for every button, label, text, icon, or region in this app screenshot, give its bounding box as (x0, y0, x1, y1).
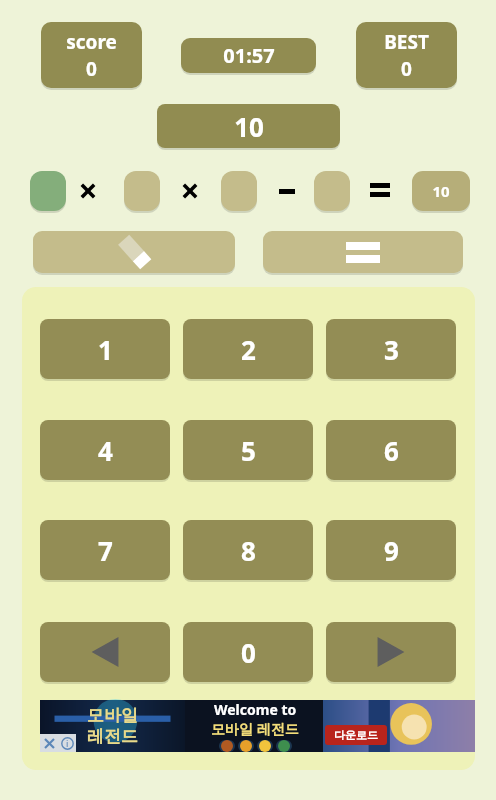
button[interactable] (314, 171, 350, 211)
staticText: 7 (98, 533, 113, 568)
button[interactable] (124, 171, 160, 211)
staticText: BEST (384, 29, 429, 55)
button[interactable]: score (41, 22, 142, 88)
button[interactable]: Erase (33, 231, 235, 273)
staticText: 3 (384, 332, 399, 367)
staticText: 1 (98, 332, 113, 367)
button[interactable]: 6 (326, 420, 456, 480)
button[interactable]: Previous (40, 622, 170, 682)
button[interactable]: 7 (40, 520, 170, 580)
staticText: 4 (98, 433, 113, 468)
button[interactable]: Next (326, 622, 456, 682)
button[interactable] (30, 171, 66, 211)
staticText: 10 (234, 109, 264, 144)
staticText: 다운로드 (334, 728, 378, 742)
button[interactable]: 0 (183, 622, 313, 682)
staticText: 01:57 (223, 42, 275, 69)
button[interactable]: Ad information (58, 734, 76, 752)
button[interactable]: 4 (40, 420, 170, 480)
staticText: score (66, 29, 117, 55)
button[interactable]: 3 (326, 319, 456, 379)
button[interactable]: 10 (412, 171, 470, 211)
staticText: 8 (241, 533, 256, 568)
staticText: 모바일 레전드 (211, 719, 299, 738)
button[interactable]: 10 (157, 104, 340, 148)
staticText: 0 (241, 635, 256, 670)
staticText: 레전드 (87, 726, 138, 747)
staticText: Welcome to (214, 700, 297, 719)
staticText: 모바일 (87, 705, 138, 726)
staticText: 6 (384, 433, 399, 468)
button[interactable]: 다운로드 (325, 725, 387, 745)
staticText: 5 (241, 433, 256, 468)
button[interactable]: Equals (263, 231, 463, 273)
button[interactable]: BEST (356, 22, 457, 88)
staticText: 9 (384, 533, 399, 568)
button[interactable]: 9 (326, 520, 456, 580)
button[interactable]: Close ad (40, 734, 58, 752)
button[interactable]: 8 (183, 520, 313, 580)
button[interactable]: 2 (183, 319, 313, 379)
button[interactable]: 01:57 (181, 38, 316, 73)
staticText: 0 (401, 56, 412, 82)
staticText: i (66, 737, 69, 749)
staticText: 10 (432, 181, 450, 201)
button[interactable] (221, 171, 257, 211)
staticText: 0 (86, 56, 97, 82)
button[interactable]: 5 (183, 420, 313, 480)
button[interactable]: 1 (40, 319, 170, 379)
staticText: 2 (241, 332, 256, 367)
